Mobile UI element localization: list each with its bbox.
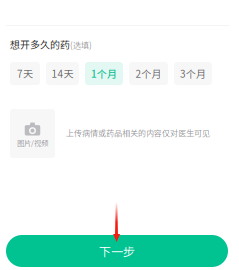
staticText: 14天 — [51, 66, 73, 81]
staticText: 想开多久的药 — [10, 37, 70, 51]
staticText: 3个月 — [180, 66, 206, 81]
staticText: 下一步 — [99, 242, 135, 260]
button[interactable]: 7天 — [10, 62, 40, 85]
button[interactable]: 上传图片或视频 — [10, 109, 55, 158]
staticText: 上传病情或药品相关的内容仅对医生可见 — [66, 127, 210, 139]
staticText: 2个月 — [135, 66, 161, 81]
staticText: (选填) — [70, 39, 92, 51]
button[interactable]: 1个月 — [85, 62, 123, 85]
button[interactable]: 3个月 — [174, 62, 212, 85]
button[interactable]: 2个月 — [129, 62, 168, 85]
staticText: 1个月 — [91, 66, 117, 81]
button[interactable]: 下一步 — [6, 235, 228, 267]
staticText: 图片/视频 — [17, 137, 48, 148]
staticText: 7天 — [17, 66, 33, 81]
button[interactable]: 14天 — [46, 62, 79, 85]
